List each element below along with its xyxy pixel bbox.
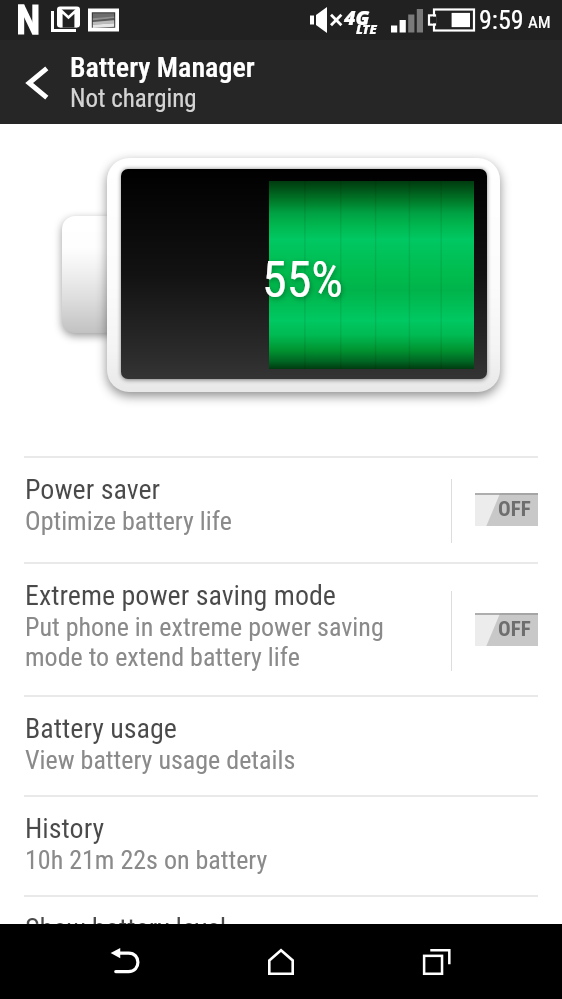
staticText: Optimize battery life (25, 506, 232, 536)
staticText: Extreme power saving mode (25, 579, 336, 612)
staticText: 9:59 (479, 5, 524, 35)
button[interactable] (0, 695, 562, 795)
button[interactable]: Back (5, 40, 75, 124)
staticText: View battery usage details (25, 745, 296, 775)
staticText: AM (528, 12, 551, 32)
staticText: 10h 21m 22s on battery (25, 845, 268, 875)
staticText: Put phone in extreme power saving (25, 612, 384, 642)
staticText: OFF (498, 497, 531, 522)
staticText: Battery usage (25, 712, 177, 745)
button[interactable] (0, 562, 562, 695)
button[interactable]: Toggle off (475, 493, 538, 526)
staticText: History (25, 812, 105, 845)
staticText: OFF (498, 617, 531, 642)
staticText: Power saver (25, 473, 161, 506)
button[interactable] (0, 456, 562, 562)
staticText: 4G (344, 4, 370, 31)
button[interactable] (0, 895, 562, 999)
staticText: Show battery level (25, 912, 227, 945)
staticText: Not charging (70, 84, 197, 113)
button[interactable]: Home (241, 924, 321, 999)
button[interactable]: Recent apps (397, 924, 477, 999)
staticText: Battery Manager (70, 51, 255, 84)
staticText: LTE (356, 20, 377, 38)
staticText: mode to extend battery life (25, 642, 300, 672)
button[interactable]: Toggle off (475, 613, 538, 646)
button[interactable] (0, 795, 562, 895)
staticText: 55% (262, 251, 344, 310)
button[interactable]: Back (86, 924, 166, 999)
